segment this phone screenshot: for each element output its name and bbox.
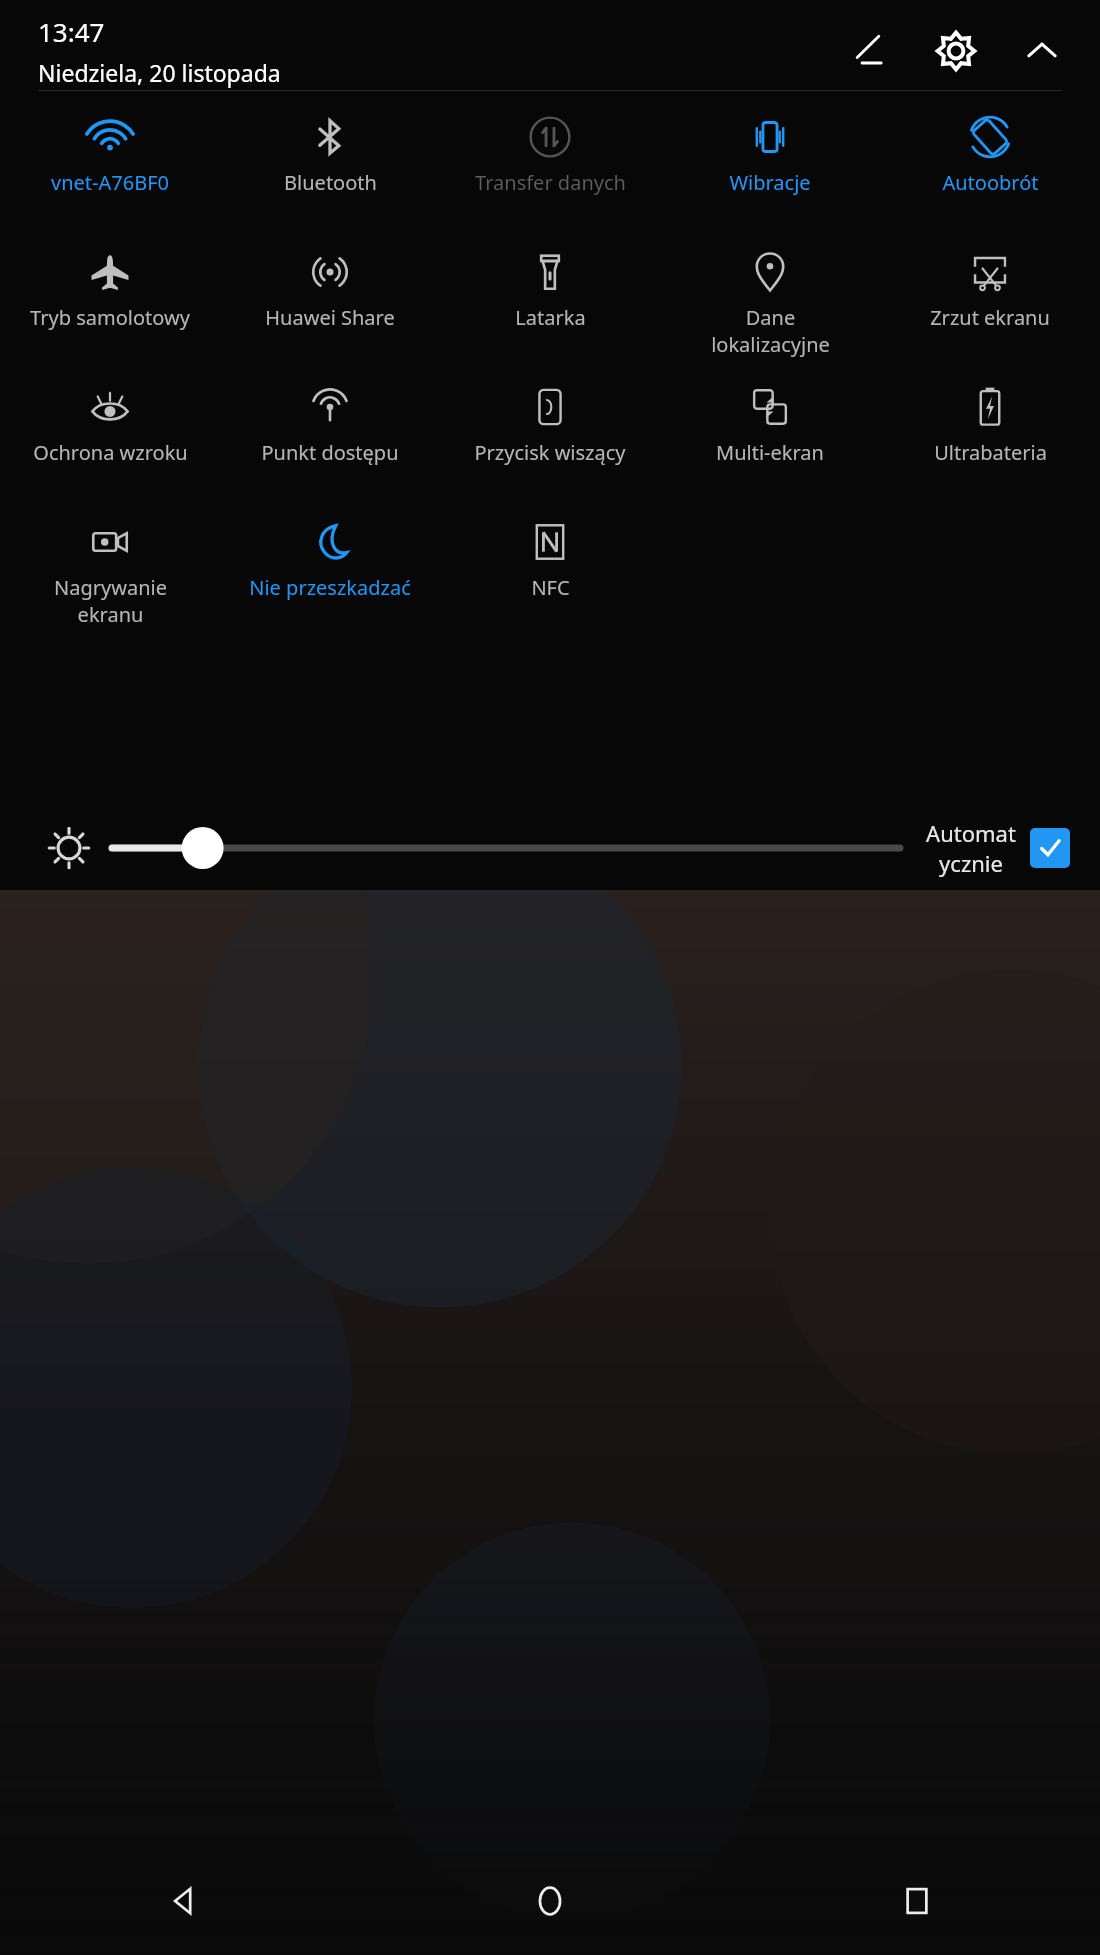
button[interactable]: Transfer danych — [440, 105, 660, 240]
staticText: Zrzut ekranu — [930, 304, 1050, 331]
button[interactable]: Collapse — [1014, 23, 1070, 79]
button[interactable]: Nie przeszkadzać — [220, 510, 440, 645]
button[interactable]: Autoobrót — [880, 105, 1100, 240]
button[interactable]: Punkt dostępu — [220, 375, 440, 510]
staticText: Automat ycznie — [926, 818, 1016, 878]
staticText: Przycisk wiszący — [474, 439, 626, 466]
button[interactable]: Automat ycznie — [926, 818, 1070, 878]
button[interactable]: Nagrywanie ekranu — [0, 510, 220, 645]
button[interactable]: Ochrona wzroku — [0, 375, 220, 510]
button[interactable]: Home — [366, 1847, 733, 1955]
staticText: Wibracje — [729, 169, 811, 196]
staticText: vnet-A76BF0 — [51, 169, 169, 196]
button[interactable]: Settings — [928, 23, 984, 79]
button[interactable]: vnet-A76BF0 — [0, 105, 220, 240]
staticText: Multi-ekran — [716, 439, 824, 466]
staticText: Ultrabateria — [934, 439, 1047, 466]
button[interactable]: Ultrabateria — [880, 375, 1100, 510]
button[interactable]: Bluetooth — [220, 105, 440, 240]
staticText: NFC — [531, 574, 570, 601]
button[interactable]: Zrzut ekranu — [880, 240, 1100, 375]
staticText: Autoobrót — [942, 169, 1039, 196]
staticText: Tryb samolotowy — [30, 304, 190, 331]
button[interactable]: Edit — [842, 23, 898, 79]
button[interactable]: Przycisk wiszący — [440, 375, 660, 510]
button[interactable]: Brightness — [112, 825, 900, 871]
staticText: 13:47 — [38, 14, 105, 49]
button[interactable]: Latarka — [440, 240, 660, 375]
button[interactable]: Recents — [733, 1847, 1100, 1955]
staticText: Ochrona wzroku — [33, 439, 188, 466]
staticText: Bluetooth — [284, 169, 377, 196]
button[interactable]: Huawei Share — [220, 240, 440, 375]
button[interactable]: Back — [0, 1847, 366, 1955]
staticText: Latarka — [515, 304, 586, 331]
staticText: Niedziela, 20 listopada — [38, 57, 281, 88]
staticText: Transfer danych — [475, 169, 626, 196]
button[interactable]: NFC — [440, 510, 660, 645]
staticText: Huawei Share — [265, 304, 395, 331]
button[interactable]: Tryb samolotowy — [0, 240, 220, 375]
button[interactable]: Multi-ekran — [660, 375, 880, 510]
button[interactable]: Wibracje — [660, 105, 880, 240]
staticText: Dane lokalizacyjne — [711, 304, 830, 358]
staticText: Nie przeszkadzać — [249, 574, 411, 601]
button[interactable]: Dane lokalizacyjne — [660, 240, 880, 375]
staticText: Punkt dostępu — [261, 439, 399, 466]
staticText: Nagrywanie ekranu — [54, 574, 167, 628]
